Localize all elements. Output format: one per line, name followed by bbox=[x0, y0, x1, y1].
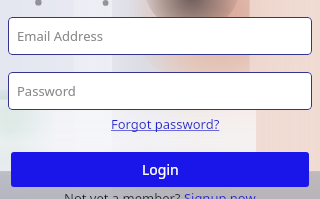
staticText: Password bbox=[17, 82, 76, 100]
button[interactable]: Forgot password? bbox=[109, 113, 222, 135]
button[interactable]: Not yet a member? Signup now bbox=[64, 189, 256, 199]
button[interactable]: Password bbox=[8, 72, 312, 110]
staticText: Email Address bbox=[17, 27, 103, 45]
button[interactable]: Email Address bbox=[8, 17, 312, 55]
button[interactable]: Login bbox=[11, 152, 309, 187]
staticText: Login bbox=[142, 160, 179, 179]
staticText: Not yet a member? Signup now bbox=[64, 189, 256, 199]
staticText: Forgot password? bbox=[111, 115, 220, 133]
